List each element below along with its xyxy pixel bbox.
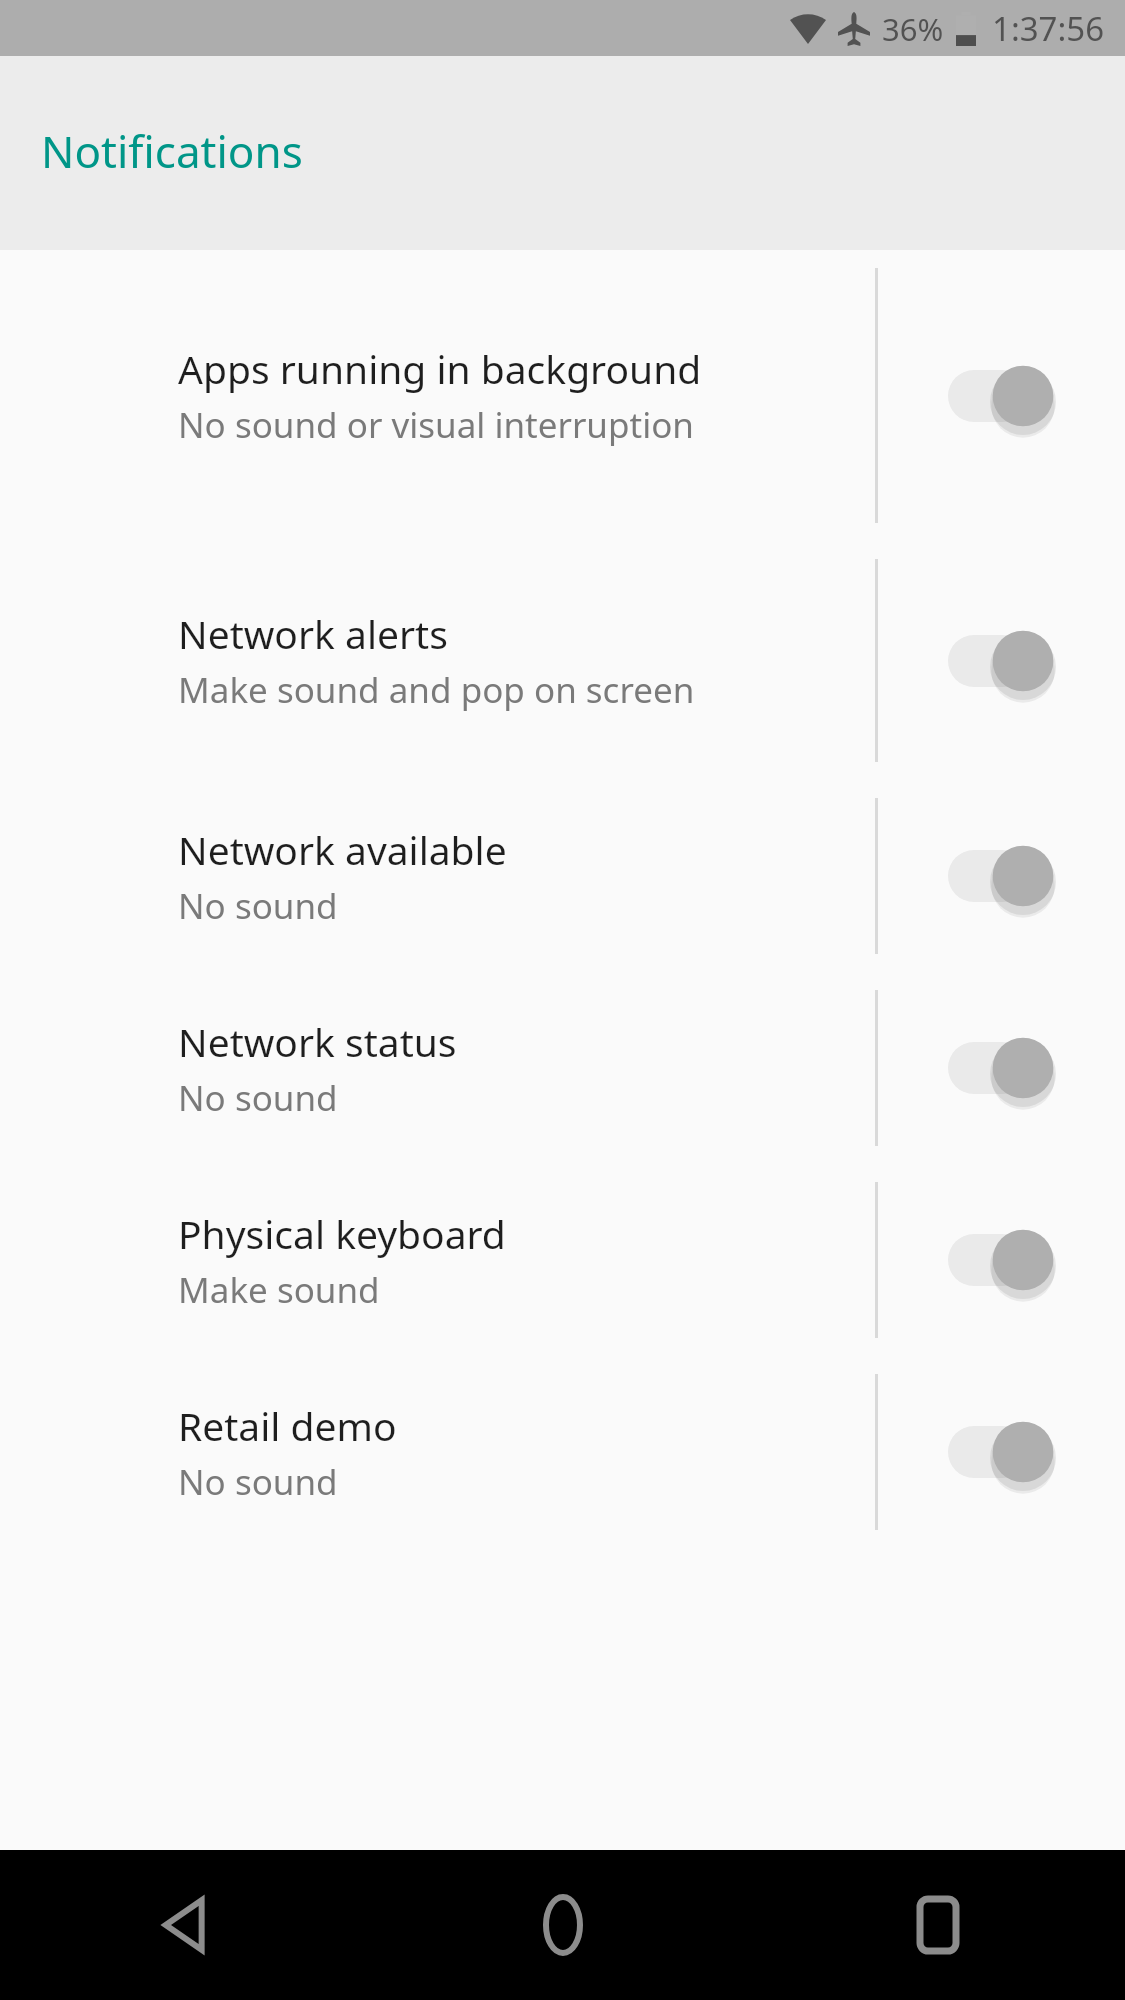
button[interactable]: Network status <box>0 972 1125 1164</box>
button[interactable]: Toggle Network alerts <box>878 541 1125 780</box>
staticText: Make sound and pop on screen <box>178 666 695 714</box>
staticText: No sound <box>178 1074 338 1122</box>
staticText: 36% <box>882 8 944 50</box>
button[interactable]: Recents <box>750 1850 1125 2000</box>
staticText: Retail demo <box>178 1399 397 1452</box>
button[interactable]: Apps running in background <box>0 250 1125 541</box>
button[interactable]: Toggle Network status <box>878 972 1125 1164</box>
button[interactable]: Physical keyboard <box>0 1164 1125 1356</box>
staticText: Physical keyboard <box>178 1207 506 1260</box>
button[interactable]: Toggle Retail demo <box>878 1356 1125 1548</box>
button[interactable]: Toggle Physical keyboard <box>878 1164 1125 1356</box>
button[interactable]: Toggle Network available <box>878 780 1125 972</box>
staticText: 1:37:56 <box>992 6 1105 51</box>
staticText: No sound or visual interruption <box>178 401 694 449</box>
button[interactable]: Network available <box>0 780 1125 972</box>
staticText: Network alerts <box>178 607 448 660</box>
button[interactable]: Retail demo <box>0 1356 1125 1548</box>
staticText: Make sound <box>178 1266 380 1314</box>
staticText: Network available <box>178 823 507 876</box>
button[interactable]: Home <box>375 1850 750 2000</box>
button[interactable]: Back <box>0 1850 375 2000</box>
staticText: Notifications <box>41 121 303 181</box>
staticText: No sound <box>178 882 338 930</box>
staticText: Apps running in background <box>178 342 702 395</box>
button[interactable]: Network alerts <box>0 541 1125 780</box>
staticText: Network status <box>178 1015 457 1068</box>
staticText: No sound <box>178 1458 338 1506</box>
button[interactable]: Toggle Apps running in background <box>878 250 1125 541</box>
